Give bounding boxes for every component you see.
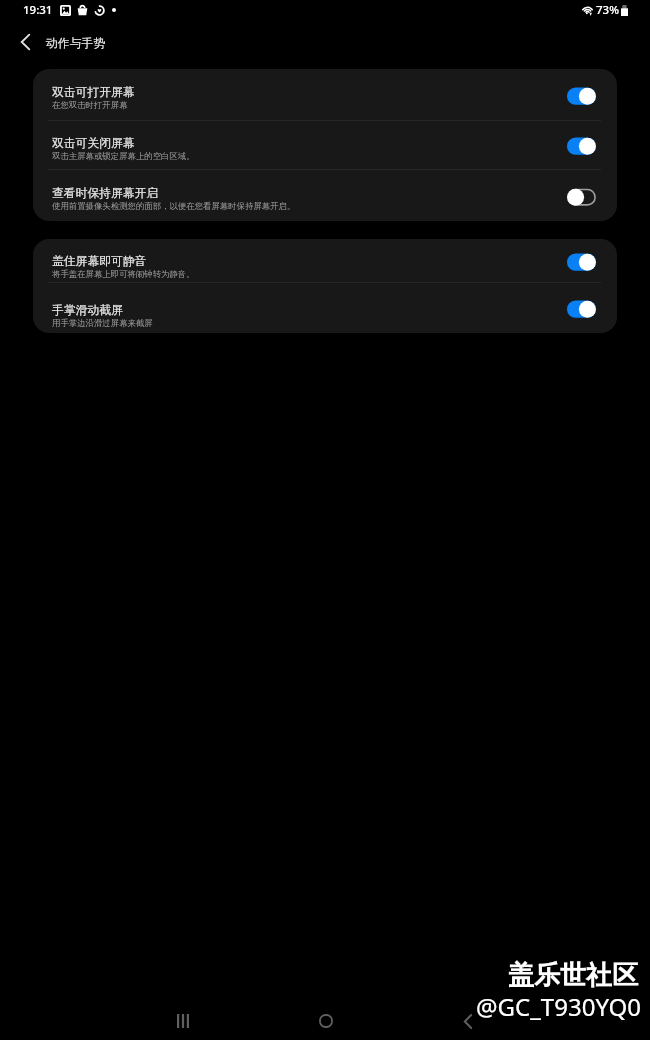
staticText: 盖住屏幕即可静音 [52,254,147,269]
staticText: 双击主屏幕或锁定屏幕上的空白区域。 [52,151,195,162]
staticText: 19:31 [23,2,53,18]
staticText: 73% [596,2,619,18]
button[interactable]: 盖住屏幕即可静音 [33,239,617,282]
staticText: 用手掌边沿滑过屏幕来截屏 [52,318,153,329]
button[interactable]: Home [306,1001,346,1040]
staticText: 盖乐世社区 [508,959,638,992]
staticText: 使用前置摄像头检测您的面部，以便在您看屏幕时保持屏幕开启。 [52,201,296,212]
button[interactable]: Recents [163,1001,203,1040]
button[interactable]: 双击可打开屏幕 [33,69,617,120]
staticText: 查看时保持屏幕开启 [52,186,159,201]
staticText: 双击可打开屏幕 [52,85,135,100]
staticText: 手掌滑动截屏 [52,303,123,318]
button[interactable]: 双击可关闭屏幕 [33,121,617,169]
button[interactable]: Back [8,25,42,59]
staticText: 在您双击时打开屏幕 [52,100,128,111]
button[interactable]: 手掌滑动截屏 [33,283,617,333]
staticText: @GC_T930YQ0 [476,990,641,1023]
staticText: 动作与手势 [46,36,105,51]
button[interactable]: Back [448,1001,488,1040]
staticText: 双击可关闭屏幕 [52,136,135,151]
button[interactable]: 查看时保持屏幕开启 [33,170,617,221]
staticText: 将手盖在屏幕上即可将闹钟转为静音。 [52,269,195,280]
